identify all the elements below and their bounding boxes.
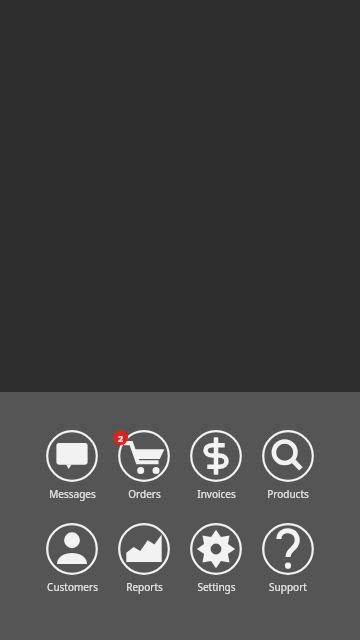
staticText: Customers [47, 580, 98, 594]
staticText: Messages [49, 487, 96, 501]
button[interactable]: Invoices [180, 430, 252, 501]
button[interactable]: Products [252, 430, 324, 501]
staticText: Settings [197, 580, 236, 594]
staticText: Products [267, 487, 309, 501]
staticText: Reports [126, 580, 163, 594]
button[interactable]: Settings [180, 523, 252, 594]
button[interactable]: Support [252, 523, 324, 594]
staticText: Orders [128, 487, 161, 501]
button[interactable]: Reports [108, 523, 180, 594]
button[interactable]: Messages [36, 430, 108, 501]
staticText: Support [269, 580, 307, 594]
button[interactable]: Customers [36, 523, 108, 594]
button[interactable]: Orders [108, 430, 180, 501]
staticText: 2 [118, 432, 124, 444]
staticText: Invoices [197, 487, 236, 501]
